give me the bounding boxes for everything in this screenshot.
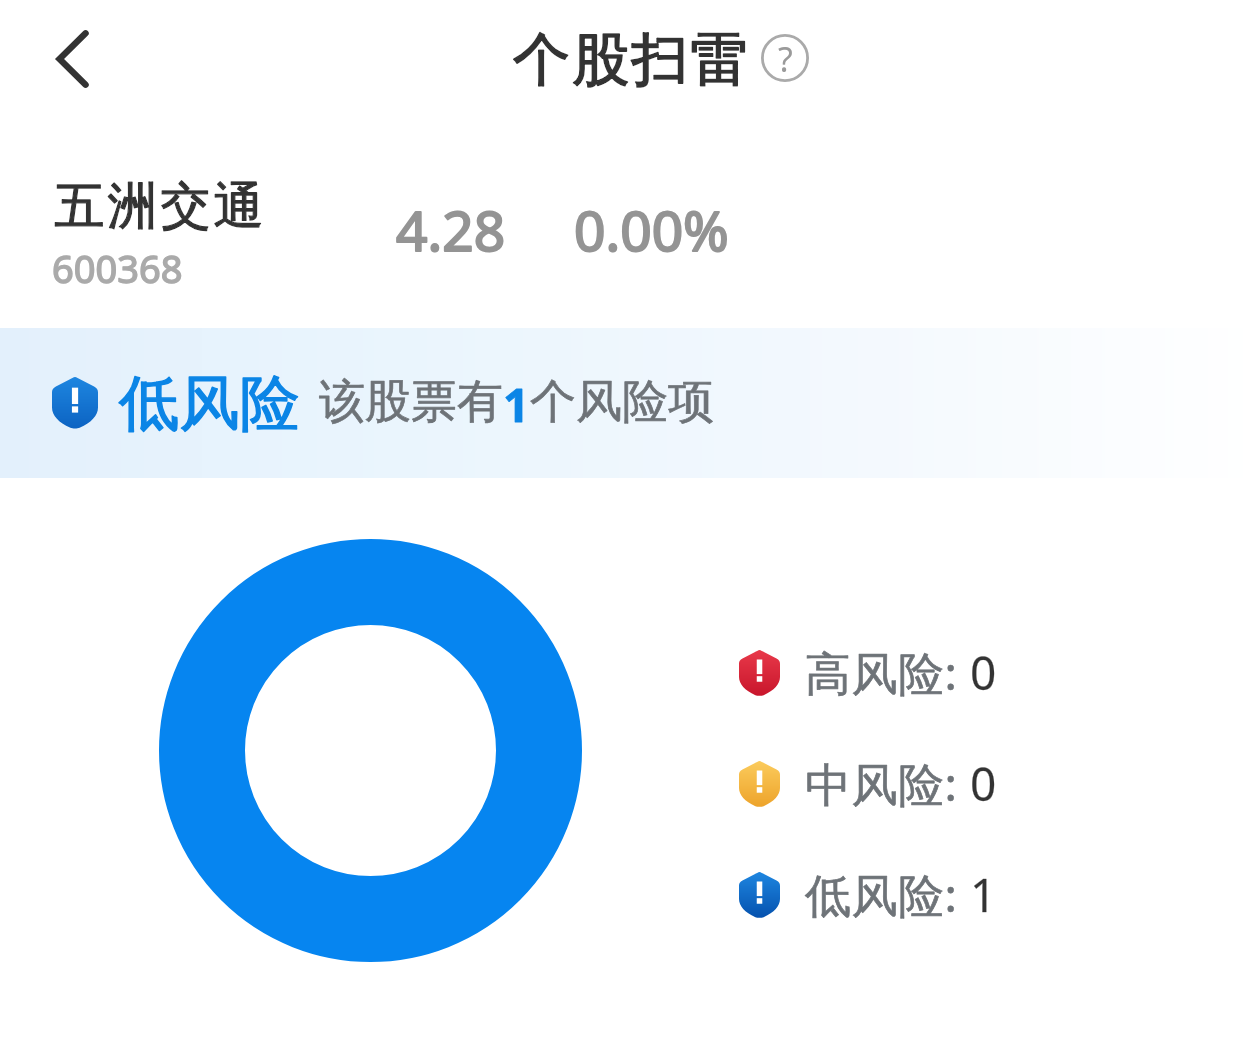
staticText: 该股票有 — [319, 373, 503, 431]
staticText: 0 — [970, 752, 997, 815]
staticText: 五洲交通 — [53, 175, 265, 238]
staticText: 高风险: — [805, 641, 970, 704]
staticText: ? — [778, 36, 793, 82]
staticText: 600368 — [52, 242, 183, 294]
staticText: 中风险: — [805, 752, 970, 815]
staticText: 中风险: — [805, 752, 970, 815]
staticText: 低风险 — [119, 366, 301, 442]
staticText: 低风险: — [805, 863, 970, 926]
staticText: 个风险项 — [530, 373, 714, 431]
staticText: 个风险项 — [530, 373, 714, 431]
staticText: 0 — [970, 641, 997, 704]
staticText: 1 — [503, 373, 530, 436]
staticText: 0 — [970, 641, 997, 704]
staticText: 0.00% — [574, 192, 729, 267]
staticText: 0.00% — [574, 192, 729, 267]
button[interactable]: 低风险 — [0, 328, 1260, 478]
staticText: 1 — [970, 863, 997, 926]
staticText: 4.28 — [396, 192, 506, 267]
button[interactable]: 高风险: — [739, 639, 999, 702]
staticText: 1 — [970, 863, 997, 926]
staticText: 600368 — [52, 242, 183, 294]
staticText: 五洲交通 — [53, 175, 265, 238]
staticText: 低风险: — [805, 863, 970, 926]
staticText: 4.28 — [396, 192, 506, 267]
staticText: 1 — [503, 373, 530, 436]
button[interactable]: Back — [31, 19, 111, 99]
staticText: 个股扫雷 — [513, 24, 750, 96]
button[interactable]: 低风险: — [739, 861, 999, 924]
staticText: 个股扫雷 — [513, 24, 750, 96]
staticText: 高风险: — [805, 641, 970, 704]
staticText: 0 — [970, 752, 997, 815]
button[interactable]: Help — [760, 33, 810, 83]
staticText: 该股票有 — [319, 373, 503, 431]
button[interactable]: 中风险: — [739, 750, 999, 813]
staticText: 低风险 — [119, 366, 301, 442]
